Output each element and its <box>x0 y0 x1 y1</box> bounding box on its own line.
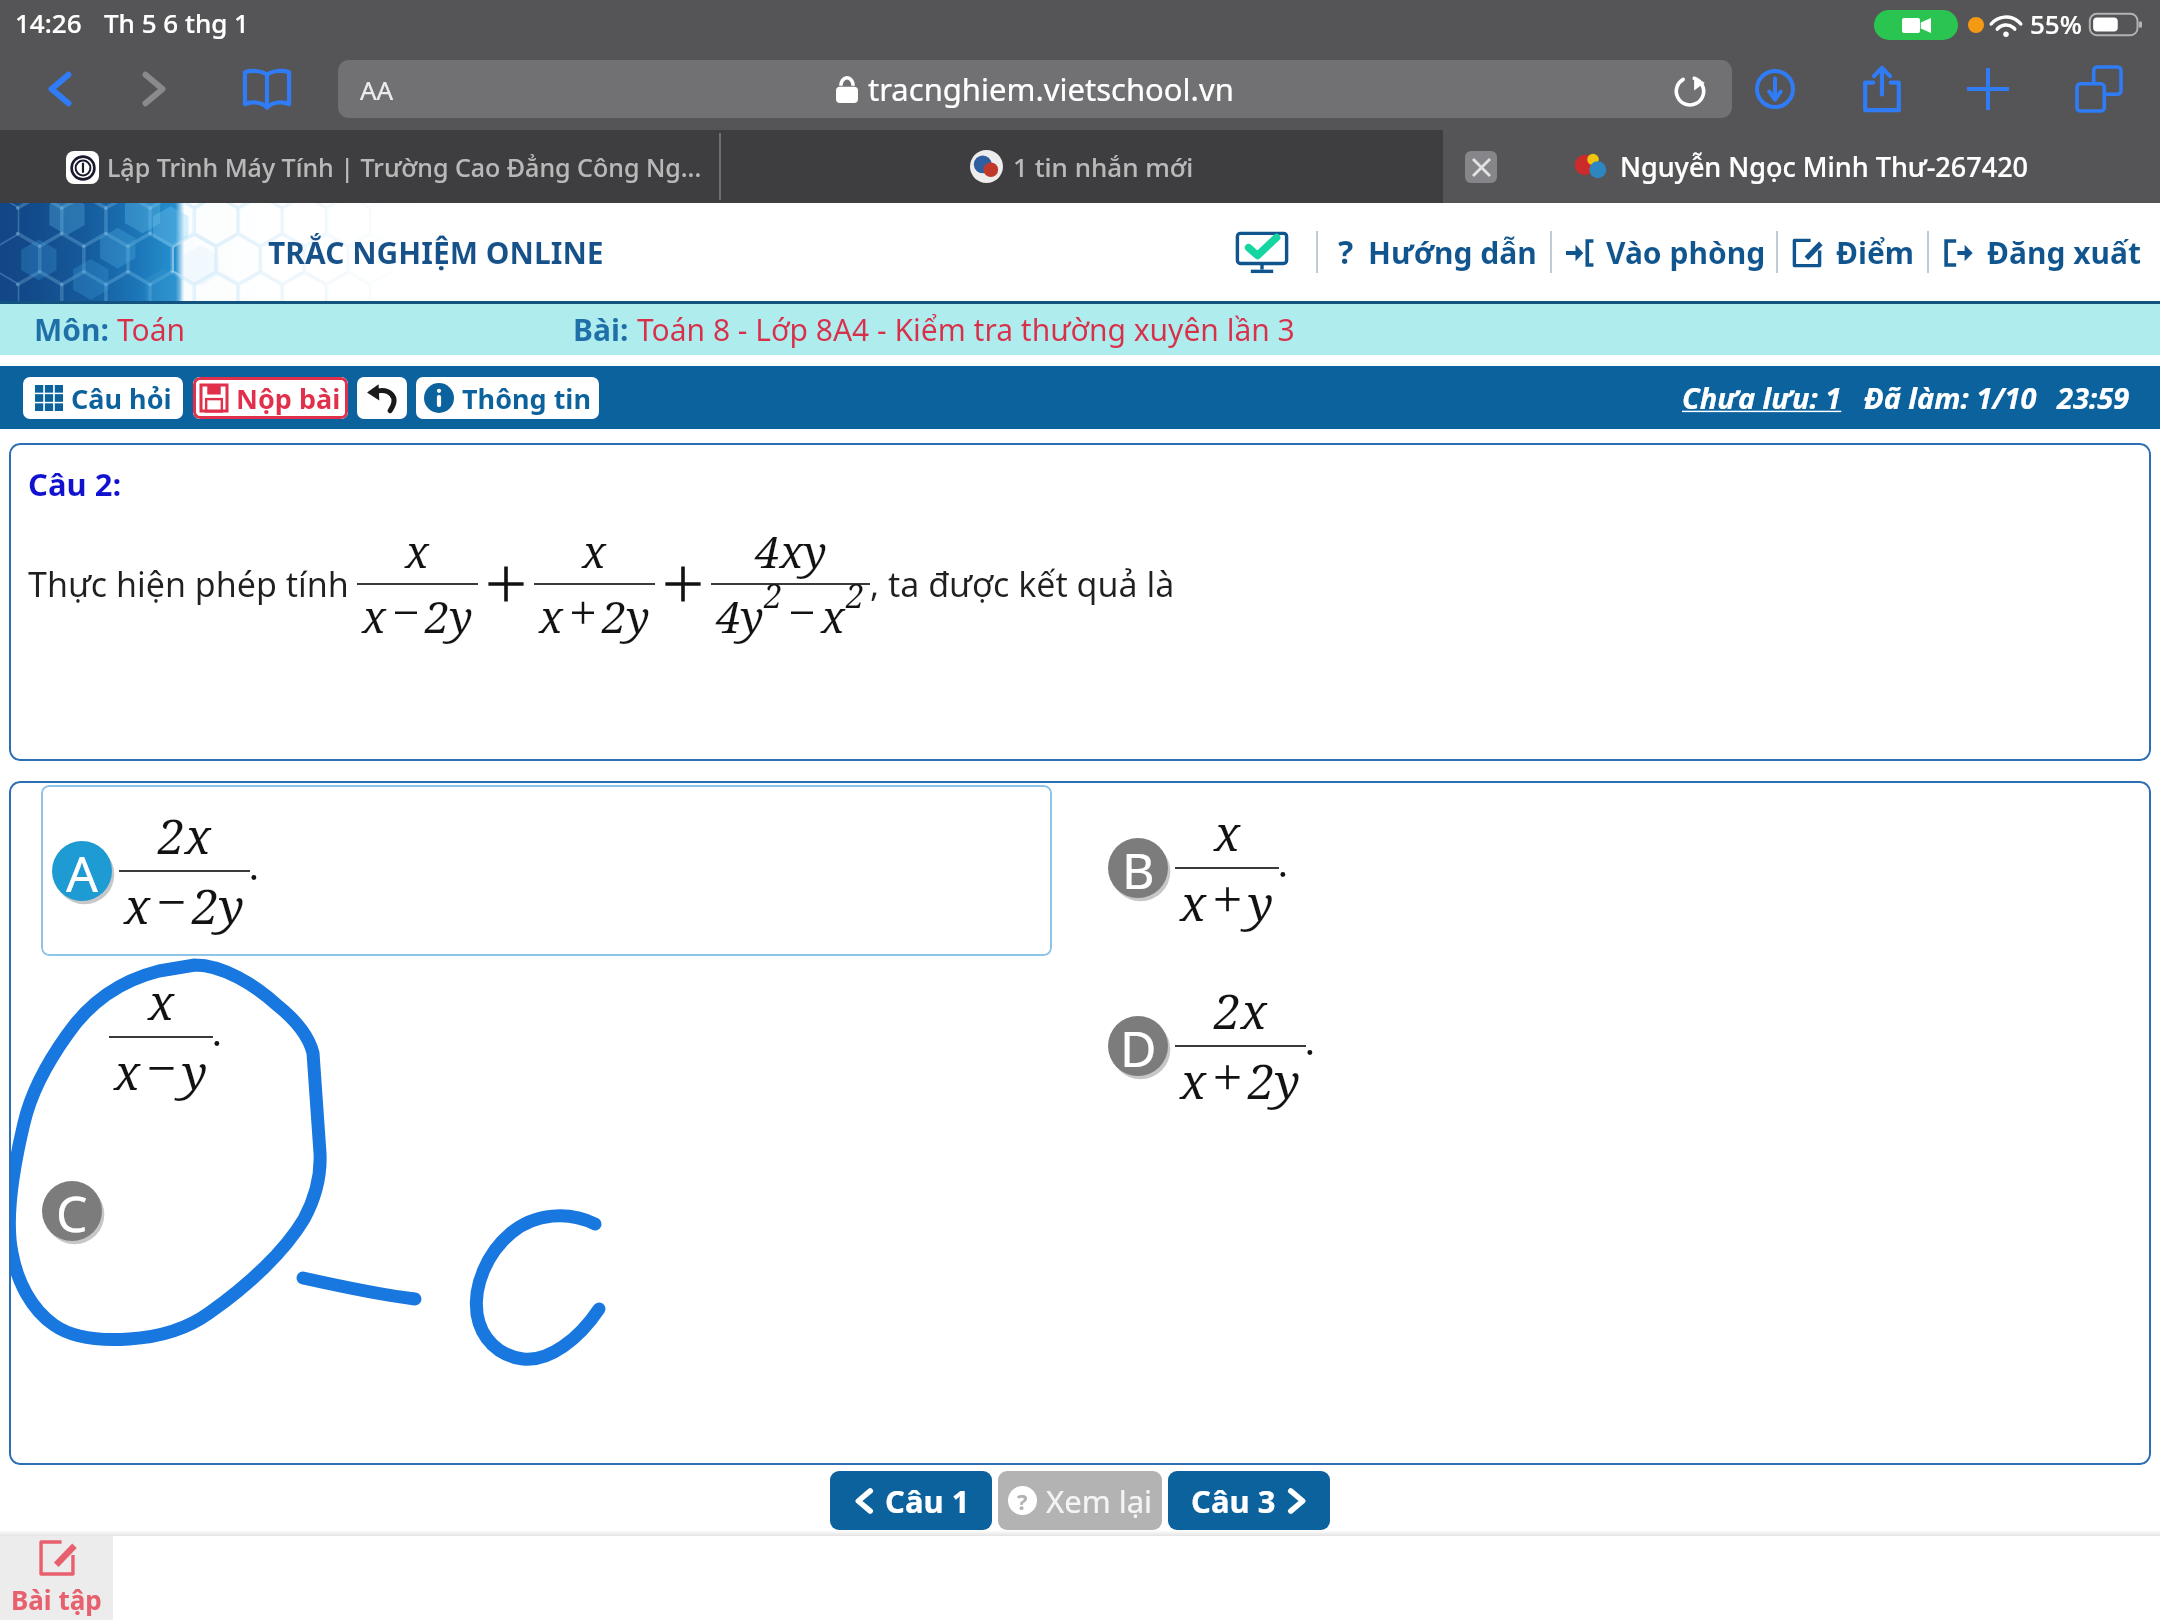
staticText: Xem lại <box>1046 1480 1153 1522</box>
button[interactable]: ? <box>1338 230 1537 274</box>
button[interactable]: Back <box>30 58 92 120</box>
staticText: Thực hiện phép tính <box>28 561 349 607</box>
staticText: 4y <box>716 586 764 646</box>
staticText: 23:59 <box>2057 378 2130 417</box>
staticText: x <box>114 1039 141 1104</box>
staticText: 2 <box>846 573 865 617</box>
staticText: Lập Trình Máy Tính | Trường Cao Đẳng Côn… <box>107 150 702 184</box>
button[interactable]: Bookmarks <box>236 58 298 120</box>
staticText: x <box>405 521 430 581</box>
staticText: x <box>1214 800 1241 865</box>
button[interactable]: 1 tin nhắn mới <box>721 130 1443 203</box>
staticText: B <box>1122 838 1155 896</box>
staticText: tracnghiem.vietschool.vn <box>868 68 1234 110</box>
staticText: x <box>582 521 607 581</box>
staticText: 2y <box>602 586 650 646</box>
staticText: x <box>124 873 151 938</box>
button[interactable]: Bài tập <box>0 1536 113 1620</box>
button[interactable]: AA <box>338 60 1732 118</box>
staticText: A <box>66 841 98 899</box>
staticText: 14:26 <box>15 5 82 40</box>
button[interactable]: Câu 2: <box>9 443 2151 761</box>
staticText: 2y <box>192 873 245 938</box>
button[interactable]: D <box>1105 978 1317 1113</box>
button[interactable]: Câu 3 <box>1168 1471 1330 1530</box>
staticText: x <box>821 586 846 646</box>
button[interactable]: Đăng xuất <box>1945 232 2142 273</box>
staticText: y <box>1248 870 1274 935</box>
staticText: Câu 2: <box>28 463 122 505</box>
staticText: y <box>182 1039 208 1104</box>
staticText: 2x <box>158 803 212 868</box>
staticText: ? <box>1338 230 1354 274</box>
staticText: x <box>1180 870 1207 935</box>
staticText: x <box>1180 1048 1207 1113</box>
staticText: Câu 3 <box>1191 1480 1276 1522</box>
button[interactable]: Undo <box>357 377 407 419</box>
staticText: 2x <box>1214 978 1268 1043</box>
button[interactable]: Tabs <box>2068 58 2130 120</box>
staticText: 1 tin nhắn mới <box>1013 149 1194 184</box>
staticText: Bài: <box>573 309 637 350</box>
staticText: , ta được kết quả là <box>870 561 1175 607</box>
staticText: x <box>362 586 387 646</box>
staticText: C <box>56 1181 88 1239</box>
staticText: AA <box>360 72 394 107</box>
button[interactable]: Downloads <box>1744 58 1806 120</box>
staticText: Bài tập <box>11 1582 102 1617</box>
staticText: x <box>539 586 564 646</box>
staticText: Hướng dẫn <box>1368 232 1537 273</box>
button[interactable]: Forward <box>122 58 184 120</box>
button[interactable]: Câu 1 <box>830 1471 992 1530</box>
button[interactable]: Share <box>1851 58 1913 120</box>
staticText: Thông tin <box>462 380 591 417</box>
staticText: TRẮC NGHIỆM ONLINE <box>268 232 604 273</box>
button[interactable]: ? <box>998 1471 1162 1530</box>
staticText: 2y <box>425 586 473 646</box>
staticText: Câu hỏi <box>71 380 172 417</box>
staticText: Đăng xuất <box>1987 232 2142 273</box>
button[interactable]: Lập Trình Máy Tính | Trường Cao Đẳng Côn… <box>0 130 721 203</box>
button[interactable]: B <box>1105 800 1290 935</box>
button[interactable]: Close tab <box>1443 130 2160 203</box>
staticText: Nộp bài <box>236 380 341 417</box>
button[interactable]: C <box>39 1178 105 1244</box>
staticText: 2 <box>764 573 783 617</box>
button[interactable]: Thông tin <box>416 377 599 419</box>
button[interactable]: Nộp bài <box>193 377 348 419</box>
staticText: Đã làm: 1/10 <box>1864 378 2037 417</box>
staticText: D <box>1120 1016 1157 1074</box>
button[interactable]: A <box>41 785 1052 956</box>
staticText: Điểm <box>1836 232 1915 273</box>
staticText: Th 5 6 thg 1 <box>104 5 249 40</box>
button[interactable]: Close tab <box>1465 151 1497 183</box>
button[interactable]: x <box>109 969 224 1104</box>
staticText: 55% <box>2030 6 2082 41</box>
button[interactable]: Chưa lưu: 1 <box>1682 378 1842 417</box>
button[interactable]: Câu hỏi <box>23 377 183 419</box>
staticText: x <box>148 969 175 1034</box>
staticText: Nguyễn Ngọc Minh Thư-267420 <box>1620 148 2029 185</box>
staticText: Toán <box>117 309 186 350</box>
button[interactable]: Reload <box>1670 69 1710 109</box>
button[interactable]: Vào phòng <box>1566 232 1766 273</box>
button[interactable]: New tab <box>1957 58 2019 120</box>
staticText: ? <box>1017 1486 1028 1515</box>
staticText: Vào phòng <box>1606 232 1766 273</box>
staticText: Môn: <box>34 309 117 350</box>
staticText: Câu 1 <box>885 1480 970 1522</box>
staticText: 4xy <box>755 521 827 581</box>
staticText: Toán 8 - Lớp 8A4 - Kiểm tra thường xuyên… <box>637 309 1295 350</box>
button[interactable]: Điểm <box>1792 232 1915 273</box>
staticText: 2y <box>1248 1048 1301 1113</box>
button[interactable]: Monitor <box>1234 230 1290 274</box>
